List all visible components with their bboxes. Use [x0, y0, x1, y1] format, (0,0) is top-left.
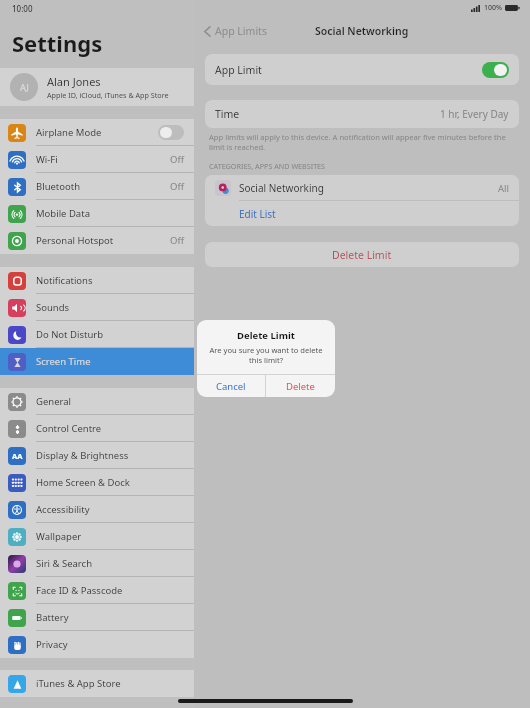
staticText: Control Centre — [36, 422, 184, 435]
staticText: Screen Time — [36, 355, 184, 368]
staticText: AA — [12, 451, 23, 461]
button[interactable]: App Limit — [205, 54, 519, 85]
staticText: Wi-Fi — [36, 153, 170, 166]
staticText: General — [36, 395, 184, 408]
staticText: Social Networking — [239, 181, 498, 195]
staticText: AJ — [20, 81, 29, 93]
staticText: Accessibility — [36, 503, 184, 516]
button[interactable]: iTunes & App Store — [0, 670, 194, 697]
button[interactable]: Personal Hotspot — [0, 227, 194, 254]
staticText: iTunes & App Store — [36, 677, 184, 690]
staticText: App Limit — [215, 63, 482, 77]
staticText: Apple ID, iCloud, iTunes & App Store — [47, 90, 169, 100]
staticText: Off — [170, 153, 184, 166]
button[interactable]: Sounds — [0, 294, 194, 321]
button[interactable]: Wi-Fi — [0, 146, 194, 173]
button[interactable]: Screen Time — [0, 348, 194, 375]
staticText: Alan Jones — [47, 74, 101, 89]
button[interactable]: Time — [205, 100, 519, 128]
button[interactable]: Home Screen & Dock — [0, 469, 194, 496]
button[interactable]: Do Not Disturb — [0, 321, 194, 348]
button[interactable]: Wallpaper — [0, 523, 194, 550]
staticText: Cancel — [216, 380, 246, 393]
staticText: Social Networking — [315, 24, 409, 38]
staticText: Edit List — [239, 207, 276, 221]
staticText: All — [498, 182, 509, 195]
staticText: CATEGORIES, APPS AND WEBSITES — [209, 161, 326, 171]
button[interactable]: AA — [0, 442, 194, 469]
staticText: Time — [215, 107, 440, 121]
button[interactable]: Siri & Search — [0, 550, 194, 577]
staticText: 100% — [484, 3, 502, 13]
staticText: Off — [170, 234, 184, 247]
button[interactable]: Notifications — [0, 267, 194, 294]
button[interactable]: Delete — [266, 375, 335, 397]
staticText: 1 hr, Every Day — [440, 107, 509, 121]
button[interactable]: Accessibility — [0, 496, 194, 523]
staticText: Home Screen & Dock — [36, 476, 184, 489]
button[interactable]: Delete Limit — [205, 242, 519, 267]
staticText: Are you sure you want to delete this lim… — [209, 345, 323, 365]
button[interactable]: General — [0, 388, 194, 415]
button[interactable]: Airplane Mode — [0, 119, 194, 146]
staticText: Mobile Data — [36, 207, 184, 220]
staticText: Do Not Disturb — [36, 328, 184, 341]
staticText: Airplane Mode — [36, 126, 158, 139]
staticText: Notifications — [36, 274, 184, 287]
staticText: Off — [170, 180, 184, 193]
button[interactable]: AJ — [0, 68, 194, 106]
staticText: Wallpaper — [36, 530, 184, 543]
staticText: Display & Brightness — [36, 449, 184, 462]
staticText: Sounds — [36, 301, 184, 314]
staticText: App limits will apply to this device. A … — [209, 132, 515, 152]
button[interactable]: Edit List — [205, 201, 519, 226]
staticText: Settings — [12, 28, 103, 58]
button[interactable]: Mobile Data — [0, 200, 194, 227]
button[interactable]: Cancel — [197, 375, 265, 397]
button[interactable]: Control Centre — [0, 415, 194, 442]
staticText: Delete Limit — [332, 248, 392, 262]
staticText: Delete — [286, 380, 315, 393]
staticText: Battery — [36, 611, 184, 624]
button[interactable]: Face ID & Passcode — [0, 577, 194, 604]
staticText: Personal Hotspot — [36, 234, 170, 247]
button[interactable]: Battery — [0, 604, 194, 631]
staticText: Delete Limit — [197, 329, 335, 342]
staticText: App Limits — [215, 24, 267, 38]
button[interactable]: Bluetooth — [0, 173, 194, 200]
button[interactable]: Privacy — [0, 631, 194, 658]
staticText: Face ID & Passcode — [36, 584, 184, 597]
staticText: Siri & Search — [36, 557, 184, 570]
staticText: 10:00 — [12, 3, 33, 14]
staticText: Bluetooth — [36, 180, 170, 193]
button[interactable]: Social Networking — [205, 175, 519, 201]
button[interactable]: App Limits — [202, 20, 269, 42]
staticText: Privacy — [36, 638, 184, 651]
